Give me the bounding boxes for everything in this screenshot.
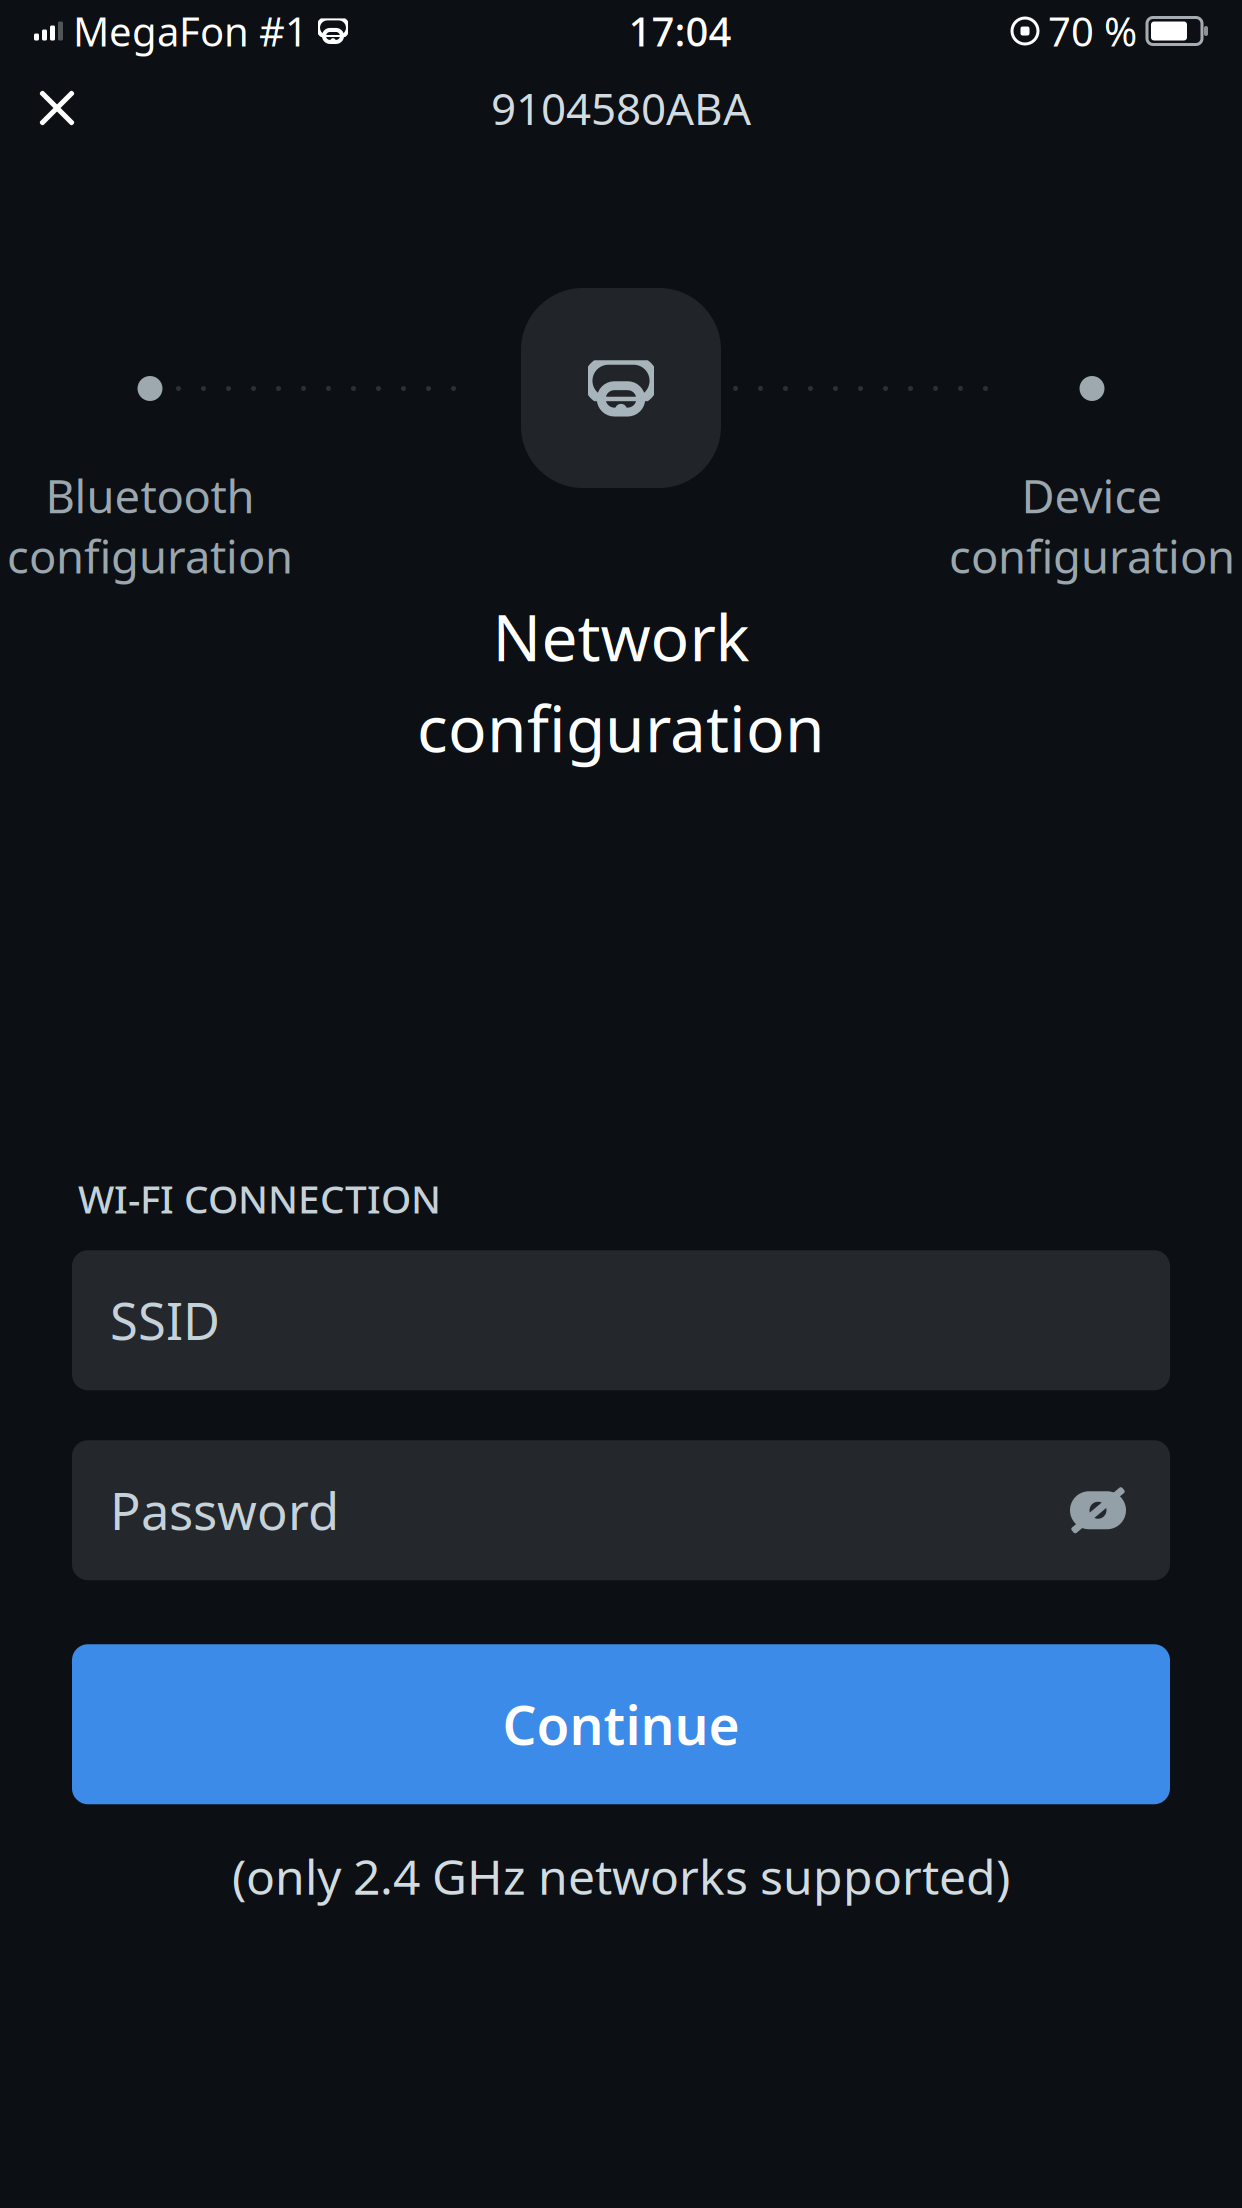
button[interactable]: SSID: [72, 1250, 1170, 1390]
staticText: SSID: [110, 1287, 220, 1354]
staticText: Continue: [502, 1689, 739, 1760]
staticText: configuration: [949, 526, 1235, 586]
staticText: Bluetooth: [45, 466, 254, 526]
staticText: Device: [1021, 466, 1162, 526]
staticText: Network: [492, 594, 749, 679]
staticText: 9104580ABA: [491, 79, 751, 137]
button[interactable]: Close: [0, 65, 114, 151]
staticText: (only 2.4 GHz networks supported): [232, 1844, 1010, 1908]
staticText: Password: [110, 1477, 339, 1544]
button[interactable]: Show password: [1044, 1486, 1132, 1534]
staticText: 17:04: [628, 4, 731, 57]
staticText: 70 %: [1048, 4, 1137, 57]
staticText: WI-FI CONNECTION: [78, 1173, 441, 1224]
staticText: MegaFon #1: [73, 4, 308, 57]
button[interactable]: Password: [72, 1440, 1170, 1580]
staticText: configuration: [417, 685, 825, 770]
staticText: configuration: [7, 526, 293, 586]
button[interactable]: Continue: [72, 1644, 1170, 1804]
